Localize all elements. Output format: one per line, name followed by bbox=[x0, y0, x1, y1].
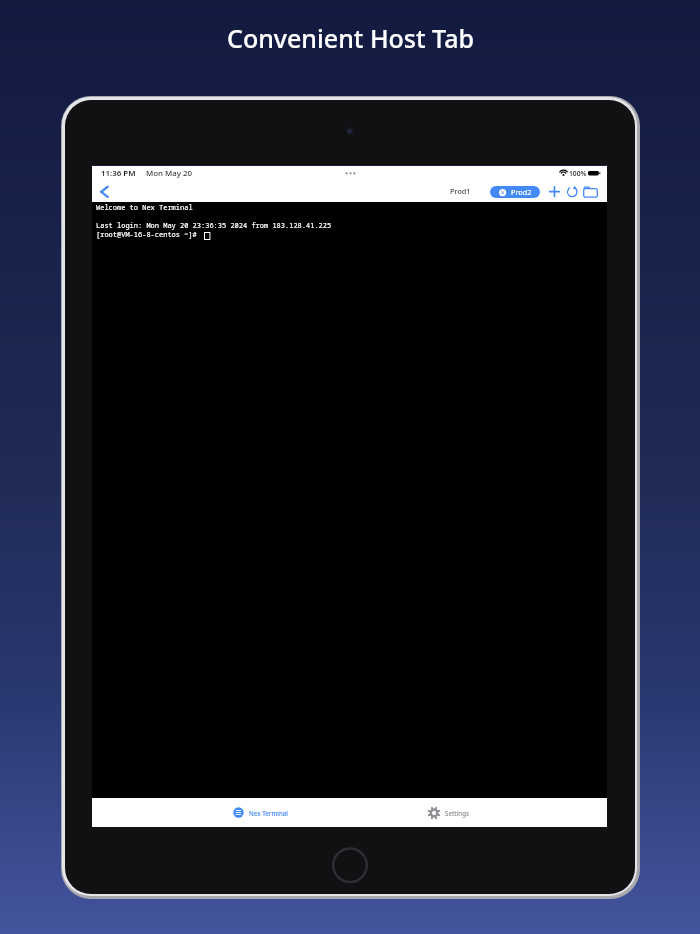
staticText: Settings bbox=[445, 809, 470, 817]
button[interactable]: Prod2 bbox=[490, 186, 540, 198]
button[interactable] bbox=[583, 186, 598, 199]
button[interactable] bbox=[548, 185, 561, 198]
button[interactable] bbox=[566, 185, 579, 198]
button[interactable]: Prod1 bbox=[444, 182, 476, 200]
staticText: Welcome to Nex Terminal bbox=[96, 203, 193, 213]
button[interactable] bbox=[331, 847, 369, 885]
button[interactable]: Settings bbox=[420, 798, 520, 827]
staticText: Prod2 bbox=[511, 187, 532, 197]
staticText: 100% bbox=[569, 169, 587, 178]
button[interactable]: Nex Terminal bbox=[225, 798, 335, 827]
staticText: Prod1 bbox=[450, 186, 471, 196]
button[interactable] bbox=[98, 184, 112, 200]
staticText: 11:36 PM bbox=[101, 168, 136, 179]
staticText: Nex Terminal bbox=[249, 809, 289, 817]
staticText: [root@VM-16-8-centos ~]# bbox=[96, 230, 201, 240]
staticText: Mon May 20 bbox=[146, 168, 193, 179]
staticText: Last login: Mon May 20 23:36:35 2024 fro… bbox=[96, 221, 332, 231]
staticText: Convenient Host Tab bbox=[227, 21, 474, 55]
